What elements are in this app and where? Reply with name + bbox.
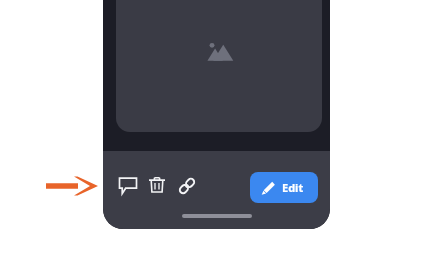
button[interactable]: Comment — [118, 175, 138, 195]
staticText: Edit — [282, 180, 304, 195]
button[interactable] — [116, 0, 322, 132]
other: Pointer arrow — [45, 175, 91, 197]
button[interactable]: Copy link — [176, 175, 198, 197]
button[interactable]: Delete — [147, 175, 167, 195]
button[interactable]: Edit — [250, 172, 318, 203]
